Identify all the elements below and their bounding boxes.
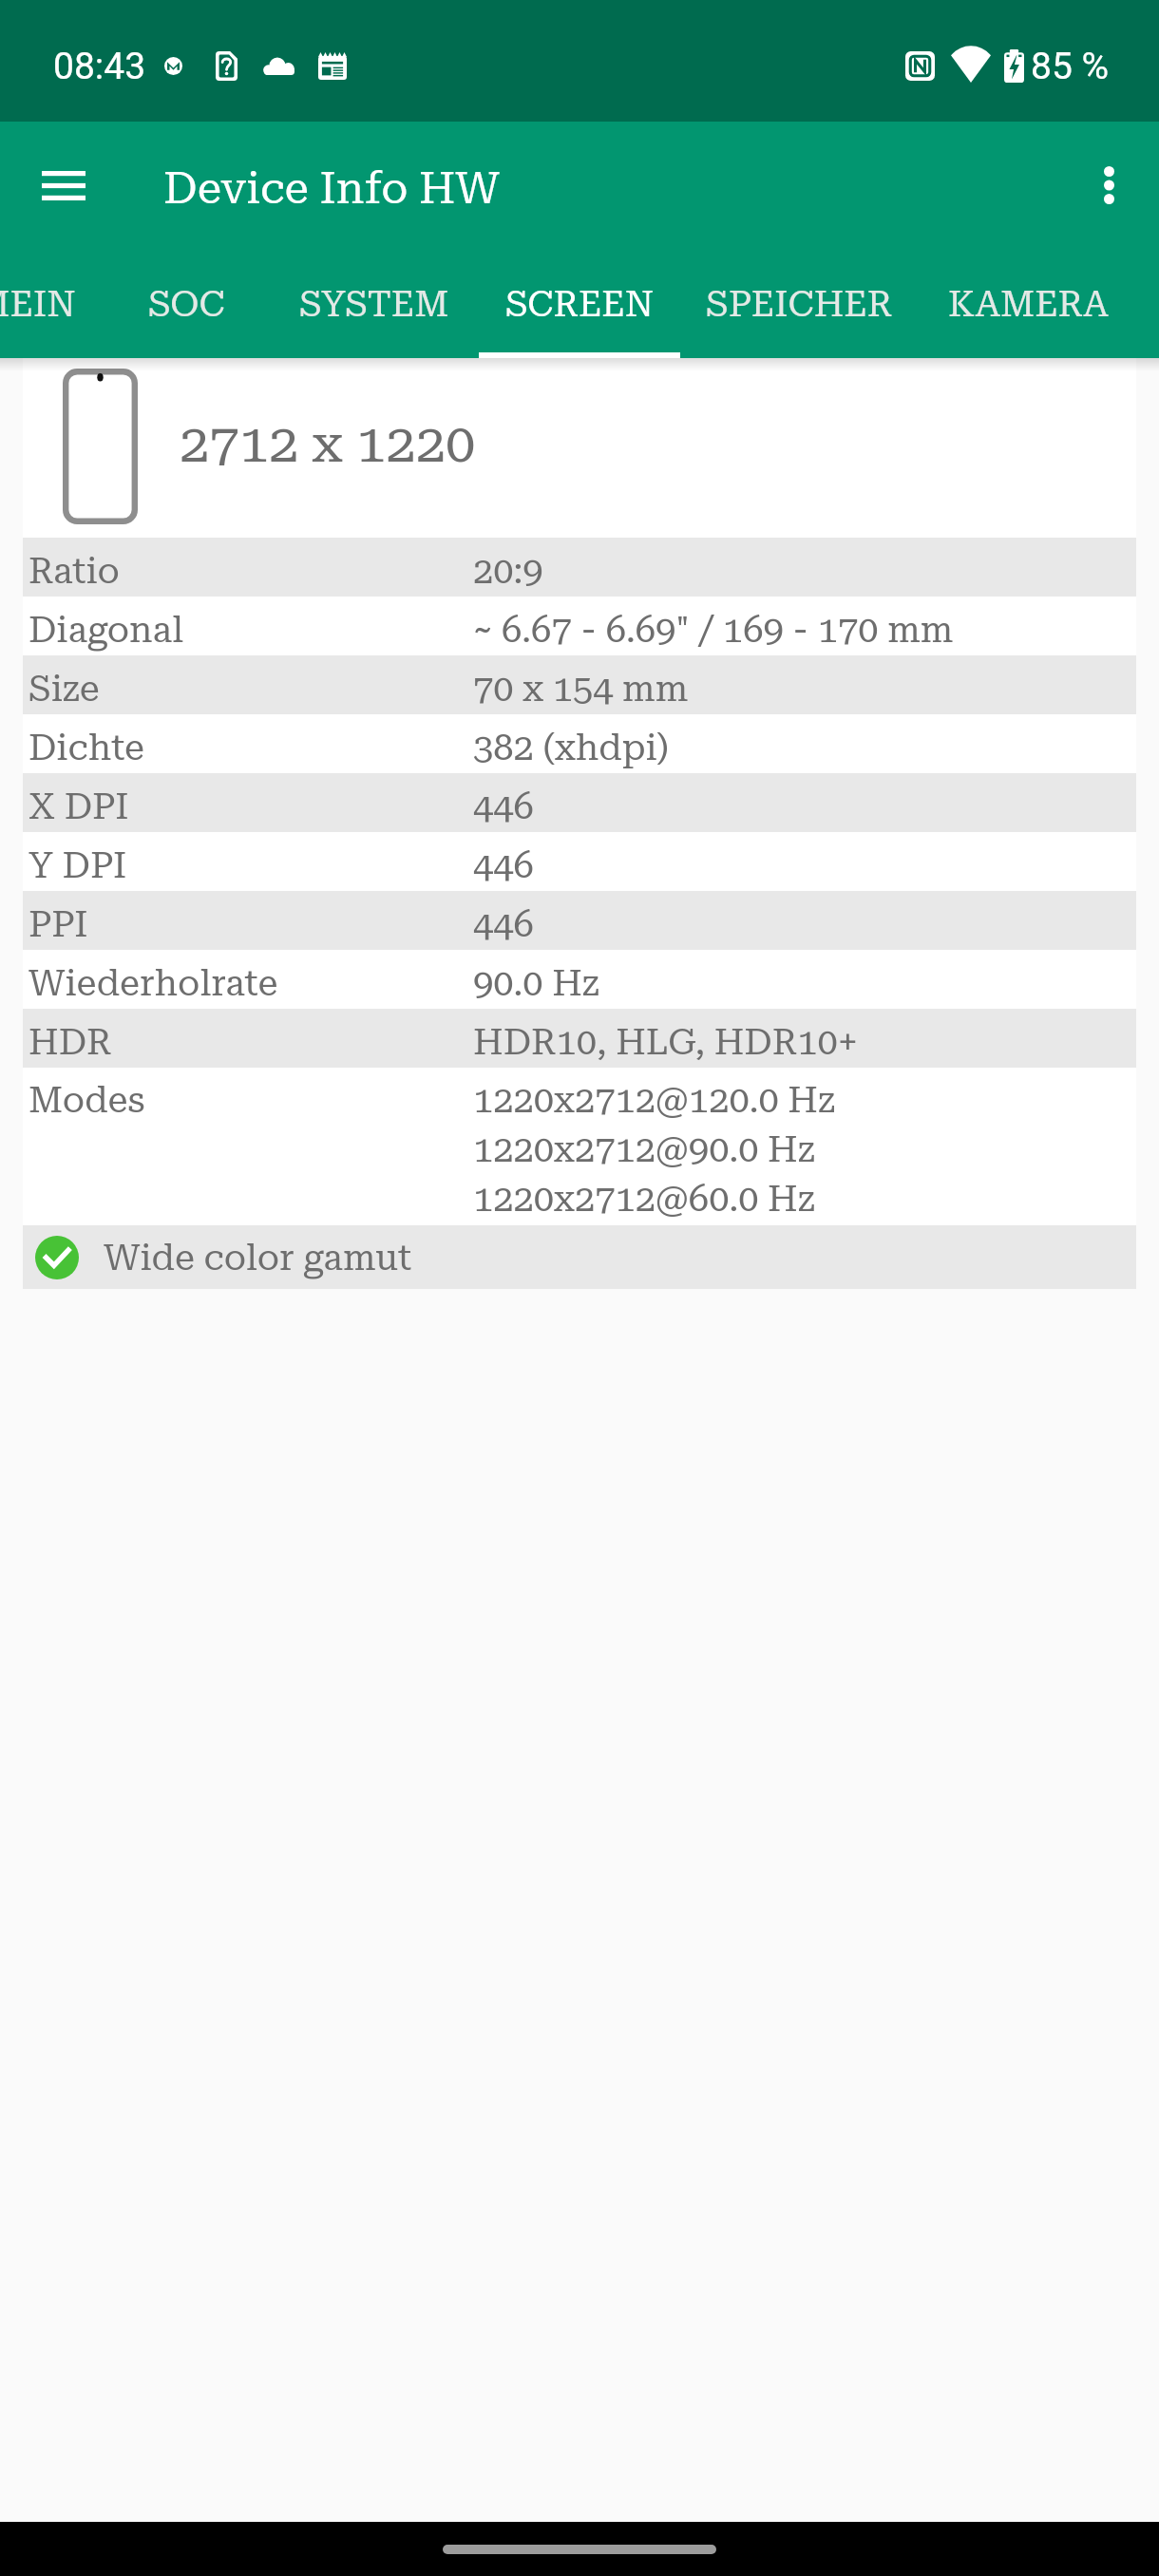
staticText: HDR10, HLG, HDR10+	[473, 1021, 1136, 1063]
staticText: ALLGEMEIN	[0, 283, 76, 325]
staticText: 446	[473, 844, 1136, 886]
button[interactable]: Size	[23, 655, 1136, 714]
staticText: KAMERA	[948, 283, 1109, 325]
button[interactable]: Modes	[23, 1068, 1136, 1225]
staticText: Wiederholrate	[28, 962, 473, 1004]
button[interactable]: PPI	[23, 891, 1136, 950]
button[interactable]: X DPI	[23, 773, 1136, 832]
staticText: 2712 x 1220	[180, 412, 476, 475]
staticText: Y DPI	[28, 844, 473, 886]
button[interactable]: Ratio	[23, 538, 1136, 597]
staticText: Ratio	[28, 550, 473, 592]
staticText: 446	[473, 903, 1136, 945]
staticText: Dichte	[28, 727, 473, 768]
staticText: 382 (xhdpi)	[473, 727, 1136, 768]
button[interactable]: KAMERA	[919, 248, 1138, 358]
staticText: 90.0 Hz	[473, 962, 1136, 1004]
button[interactable]: SOC	[104, 248, 269, 358]
button[interactable]: Wiederholrate	[23, 950, 1136, 1009]
staticText: HDR	[28, 1021, 473, 1063]
staticText: 85 %	[1031, 45, 1110, 88]
staticText: SCREEN	[505, 283, 655, 325]
staticText: PPI	[28, 903, 473, 945]
staticText: Size	[28, 668, 473, 710]
staticText: Modes	[28, 1079, 473, 1121]
staticText: Diagonal	[28, 609, 473, 651]
staticText: ~ 6.67 - 6.69" / 169 - 170 mm	[473, 609, 1136, 651]
staticText: X DPI	[28, 786, 473, 827]
staticText: 1220x2712@120.0 Hz 1220x2712@90.0 Hz 122…	[473, 1079, 1136, 1221]
button[interactable]: HDR	[23, 1009, 1136, 1068]
button[interactable]: Diagonal	[23, 597, 1136, 655]
staticText: Device Info HW	[163, 162, 500, 214]
staticText: 70 x 154 mm	[473, 668, 1136, 710]
staticText: SOC	[148, 283, 225, 325]
button[interactable]: More options	[1066, 142, 1151, 228]
staticText: 446	[473, 786, 1136, 827]
staticText: Wide color gamut	[104, 1237, 412, 1279]
staticText: 08:43	[53, 45, 146, 88]
staticText: SPEICHER	[706, 283, 893, 325]
button[interactable]: SPEICHER	[680, 248, 919, 358]
button[interactable]: ALLGEMEIN	[0, 248, 104, 358]
staticText: 20:9	[473, 550, 1136, 592]
button[interactable]: Dichte	[23, 714, 1136, 773]
button[interactable]: SCREEN	[479, 248, 680, 358]
button[interactable]: SYSTEM	[269, 248, 479, 358]
button[interactable]: Y DPI	[23, 832, 1136, 891]
staticText: SYSTEM	[299, 283, 449, 325]
button[interactable]: Open navigation drawer	[21, 142, 106, 228]
button[interactable]: Wide color gamut	[23, 1225, 1136, 1289]
